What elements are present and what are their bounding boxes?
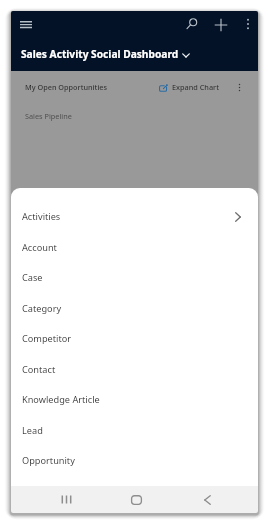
button[interactable]: Expand Chart <box>156 77 219 97</box>
button[interactable]: Add new <box>210 14 232 36</box>
button[interactable]: Activities <box>11 201 258 231</box>
button[interactable]: Case <box>11 262 258 292</box>
button[interactable]: Lead <box>11 415 258 445</box>
staticText: Contact <box>22 363 56 376</box>
button[interactable]: Category <box>11 293 258 323</box>
button[interactable]: Account <box>11 232 258 262</box>
button[interactable]: Contact <box>11 354 258 384</box>
button[interactable]: More options <box>237 13 258 34</box>
staticText: My Open Opportunities <box>25 82 108 92</box>
button[interactable]: Chart options <box>229 77 249 97</box>
staticText: Competitor <box>22 332 72 345</box>
button[interactable]: Navigation menu <box>14 13 38 37</box>
staticText: Lead <box>22 424 43 437</box>
staticText: Opportunity <box>22 454 75 467</box>
button[interactable]: Knowledge Article <box>11 384 258 414</box>
staticText: Activities <box>22 210 61 223</box>
staticText: Expand Chart <box>172 82 219 92</box>
button[interactable]: Back <box>192 486 222 513</box>
staticText: Sales Pipeline <box>25 111 72 121</box>
button[interactable]: Sales Activity Social Dashboard <box>11 44 190 64</box>
staticText: Category <box>22 302 62 315</box>
button[interactable]: Search <box>181 13 203 35</box>
button[interactable]: Competitor <box>11 323 258 353</box>
staticText: Sales Activity Social Dashboard <box>21 47 179 61</box>
staticText: Case <box>22 271 43 284</box>
staticText: Knowledge Article <box>22 393 100 406</box>
staticText: Account <box>22 241 57 254</box>
button[interactable]: Recent apps <box>52 486 81 513</box>
button[interactable]: Opportunity <box>11 445 258 475</box>
button[interactable]: Home <box>121 486 151 513</box>
